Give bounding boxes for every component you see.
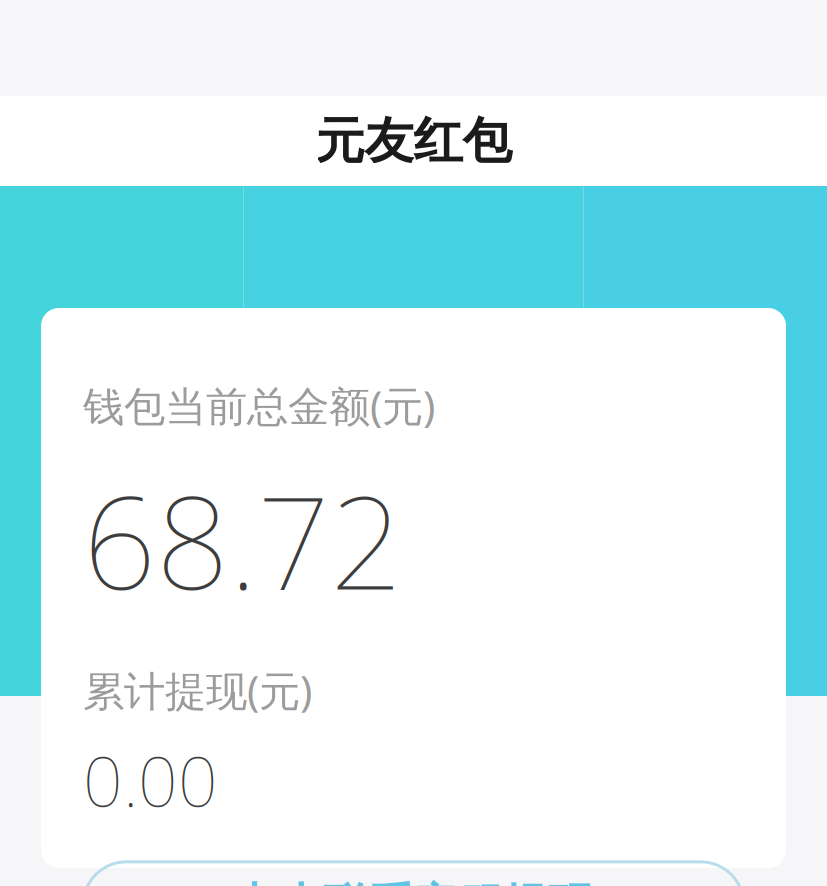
staticText: 点击联系客服提现 (233, 877, 593, 886)
staticText: 累计提现(元) (83, 663, 312, 718)
staticText: 钱包当前总金额(元) (83, 378, 435, 433)
staticText: 0.00 (83, 734, 218, 826)
button[interactable]: 点击联系客服提现 (83, 862, 744, 886)
staticText: 68.72 (83, 455, 403, 625)
staticText: 元友红包 (315, 111, 511, 171)
